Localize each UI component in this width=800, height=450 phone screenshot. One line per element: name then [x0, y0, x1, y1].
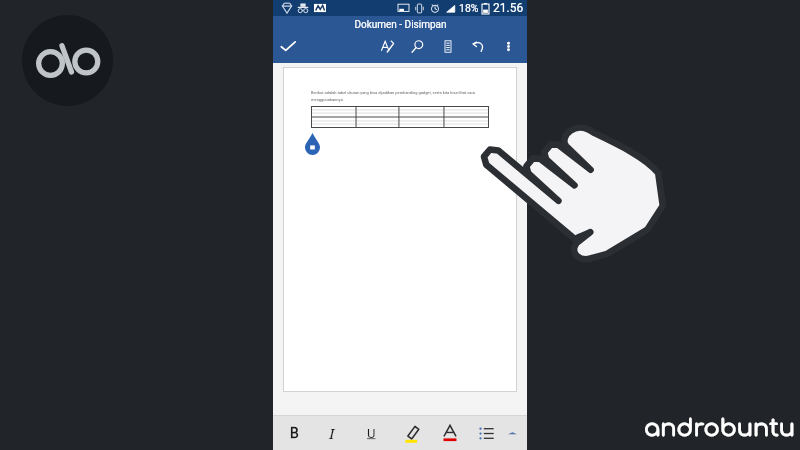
- staticText: I: [329, 423, 335, 443]
- button[interactable]: Document view: [433, 34, 463, 58]
- button[interactable]: Collapse: [497, 416, 527, 450]
- staticText: 18%: [459, 2, 479, 14]
- button[interactable]: Search: [402, 34, 433, 58]
- button[interactable]: Format text: [372, 34, 402, 58]
- staticText: B: [290, 425, 299, 441]
- button[interactable]: Bold: [279, 416, 309, 450]
- button[interactable]: Androbuntu logo: [22, 15, 113, 106]
- button[interactable]: Undo: [463, 34, 493, 58]
- staticText: androbuntu: [644, 415, 796, 442]
- button[interactable]: More options: [493, 34, 523, 58]
- button[interactable]: Italic: [317, 416, 347, 450]
- button[interactable]: Font color: [435, 416, 465, 450]
- button[interactable]: Bullet list: [471, 416, 501, 450]
- staticText: 21.56: [493, 1, 524, 15]
- button[interactable]: Highlight: [397, 416, 427, 450]
- button[interactable]: Underline: [356, 416, 386, 450]
- button[interactable]: Done: [273, 34, 303, 58]
- staticText: Dokumen - Disimpan: [354, 19, 447, 31]
- staticText: U: [367, 426, 376, 441]
- staticText: Berikut adalah tabel ukuran yang bisa di…: [311, 90, 481, 102]
